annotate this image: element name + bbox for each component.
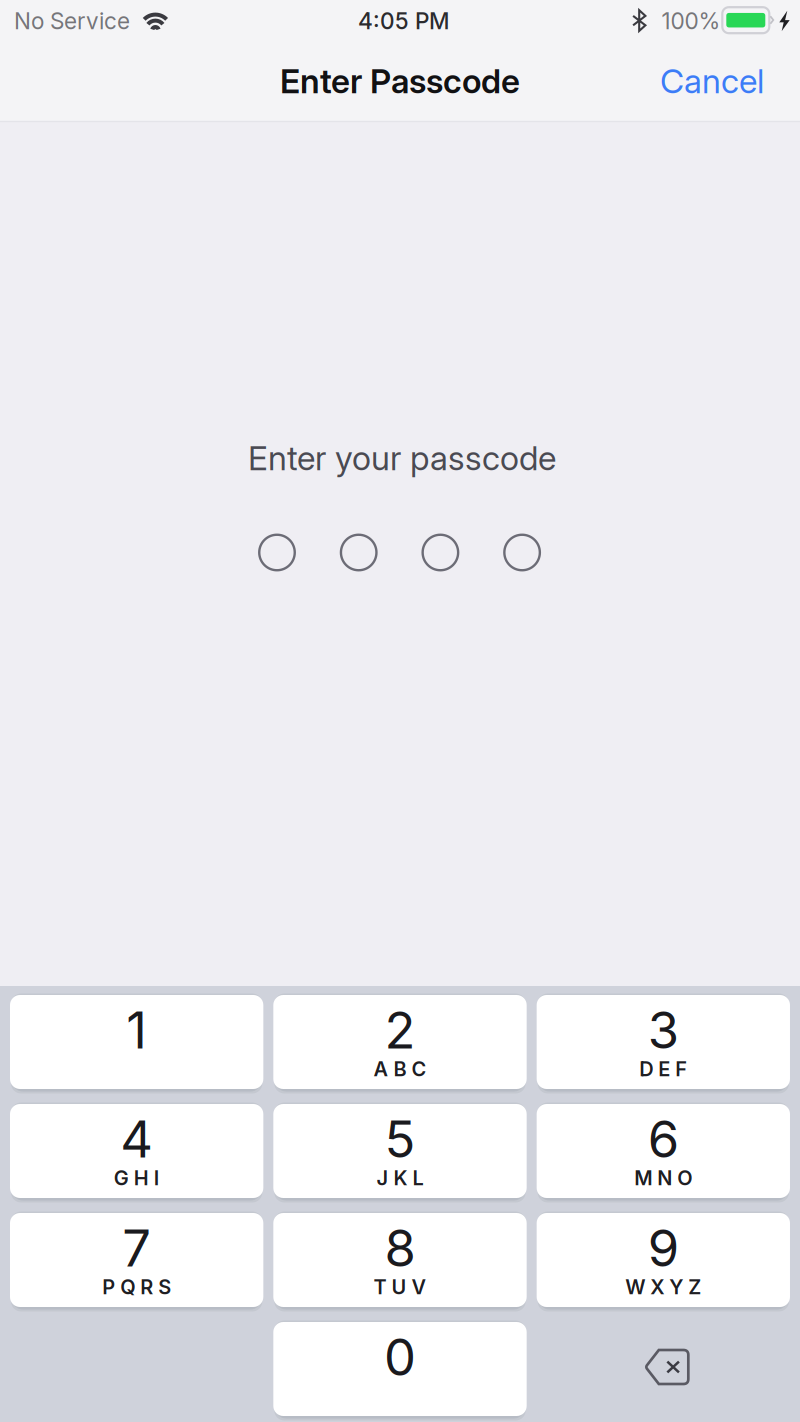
staticText: Enter Passcode (280, 61, 520, 101)
staticText: M N O (634, 1166, 692, 1190)
staticText: 100% (661, 7, 720, 35)
button[interactable]: 4 (10, 1104, 263, 1198)
staticText: D E F (639, 1057, 687, 1081)
staticText: 2 (384, 999, 415, 1061)
staticText: 3 (648, 999, 679, 1061)
staticText: Cancel (660, 61, 764, 101)
staticText: 5 (384, 1108, 415, 1170)
staticText: 7 (122, 1217, 151, 1279)
button[interactable]: Delete (541, 1320, 794, 1414)
staticText: 1 (126, 999, 147, 1061)
button[interactable]: 5 (273, 1104, 527, 1198)
staticText: G H I (114, 1166, 160, 1190)
button[interactable]: Cancel (648, 51, 776, 111)
button[interactable]: 3 (537, 995, 790, 1089)
button[interactable]: 1 (10, 995, 263, 1089)
button[interactable]: 6 (537, 1104, 790, 1198)
staticText: T U V (373, 1275, 426, 1299)
staticText: J K L (376, 1166, 423, 1190)
staticText: P Q R S (102, 1275, 171, 1299)
button[interactable]: 9 (537, 1213, 790, 1307)
staticText: A B C (373, 1057, 426, 1081)
staticText: 4 (120, 1108, 153, 1170)
staticText: 0 (384, 1326, 416, 1388)
staticText: W X Y Z (625, 1275, 701, 1299)
button[interactable]: 8 (273, 1213, 527, 1307)
staticText: 4:05 PM (358, 7, 450, 35)
staticText: 6 (648, 1108, 679, 1170)
button[interactable]: 0 (273, 1322, 527, 1416)
staticText: No Service (14, 7, 130, 35)
button[interactable]: 2 (273, 995, 527, 1089)
staticText: Enter your passcode (248, 438, 556, 478)
button[interactable]: 7 (10, 1213, 263, 1307)
staticText: 8 (384, 1217, 415, 1279)
staticText: 9 (648, 1217, 679, 1279)
